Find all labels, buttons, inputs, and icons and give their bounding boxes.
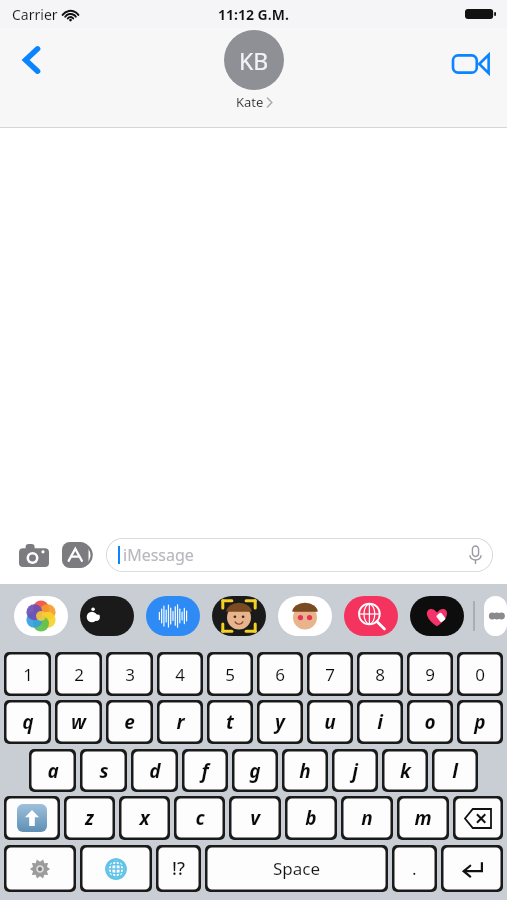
staticText: 4 <box>175 663 185 686</box>
staticText: 0 <box>475 663 485 686</box>
staticText: b <box>305 805 317 831</box>
button[interactable]: Camera <box>14 535 54 575</box>
staticText: c <box>195 805 205 831</box>
button[interactable]: Space <box>205 845 388 892</box>
staticText: l <box>452 758 458 784</box>
button[interactable]: z <box>64 796 115 840</box>
button[interactable]: o <box>407 700 453 744</box>
button[interactable]: Change keyboard <box>80 845 152 892</box>
button[interactable]: 5 <box>207 652 253 696</box>
button[interactable]: 4 <box>157 652 203 696</box>
button[interactable]: l <box>432 749 478 792</box>
staticText: z <box>85 805 94 831</box>
staticText: q <box>22 709 34 735</box>
button[interactable]: Image search <box>344 596 398 636</box>
button[interactable]: Return <box>441 845 503 892</box>
staticText: 1 <box>23 663 33 686</box>
staticText: m <box>414 805 432 831</box>
button[interactable]: 8 <box>357 652 403 696</box>
staticText: e <box>124 709 135 735</box>
staticText: Kate <box>236 93 264 111</box>
staticText: v <box>250 805 260 831</box>
button[interactable]: n <box>341 796 393 840</box>
staticText: o <box>424 709 436 735</box>
button[interactable]: e <box>106 700 153 744</box>
staticText: a <box>47 758 59 784</box>
button[interactable]: 3 <box>106 652 153 696</box>
button[interactable]: Audio message <box>146 596 200 636</box>
staticText: Space <box>273 857 321 880</box>
staticText: k <box>400 758 411 784</box>
button[interactable]: h <box>282 749 328 792</box>
staticText: 8 <box>375 663 385 686</box>
button[interactable]: s <box>80 749 127 792</box>
staticText: iMessage <box>123 544 194 566</box>
button[interactable]: 1 <box>4 652 51 696</box>
button[interactable]: Back <box>10 38 54 82</box>
button[interactable]: q <box>4 700 51 744</box>
button[interactable]: 0 <box>457 652 503 696</box>
button[interactable]: r <box>157 700 203 744</box>
button[interactable]: w <box>55 700 102 744</box>
button[interactable]: 2 <box>55 652 102 696</box>
button[interactable]: y <box>257 700 303 744</box>
staticText: x <box>139 805 150 831</box>
staticText: 9 <box>425 663 435 686</box>
button[interactable]: 6 <box>257 652 303 696</box>
staticText: p <box>474 709 486 735</box>
button[interactable]: 7 <box>307 652 353 696</box>
button[interactable]: f <box>182 749 228 792</box>
button[interactable]: c <box>174 796 225 840</box>
button[interactable]: Shift <box>4 796 60 840</box>
staticText: 5 <box>225 663 235 686</box>
button[interactable]: More apps <box>484 596 507 636</box>
button[interactable]: p <box>457 700 503 744</box>
staticText: w <box>71 709 86 735</box>
button[interactable]: x <box>119 796 170 840</box>
button[interactable]: !? <box>156 845 201 892</box>
button[interactable]: v <box>229 796 281 840</box>
button[interactable]: Apple Cash <box>80 596 134 636</box>
button[interactable]: d <box>131 749 178 792</box>
button[interactable]: Backspace <box>453 796 503 840</box>
staticText: y <box>275 709 285 735</box>
button[interactable]: b <box>285 796 337 840</box>
button[interactable]: Digital Touch <box>410 596 464 636</box>
button[interactable]: iMessage <box>106 538 493 572</box>
button[interactable]: . <box>392 845 437 892</box>
button[interactable]: Memoji stickers <box>278 596 332 636</box>
staticText: !? <box>172 856 185 881</box>
staticText: 11:12 G.M. <box>218 5 289 24</box>
staticText: u <box>324 709 336 735</box>
button[interactable]: g <box>232 749 278 792</box>
staticText: f <box>201 758 209 784</box>
staticText: 7 <box>325 663 335 686</box>
button[interactable]: Memoji <box>212 596 266 636</box>
staticText: r <box>176 709 185 735</box>
staticText: i <box>377 709 383 735</box>
button[interactable]: a <box>29 749 76 792</box>
button[interactable]: u <box>307 700 353 744</box>
staticText: 3 <box>125 663 135 686</box>
staticText: 6 <box>275 663 285 686</box>
staticText: n <box>361 805 373 831</box>
button[interactable]: Apps <box>58 535 98 575</box>
button[interactable]: m <box>397 796 449 840</box>
button[interactable]: Settings <box>4 845 76 892</box>
staticText: Carrier <box>12 5 58 24</box>
button[interactable]: k <box>382 749 428 792</box>
staticText: KB <box>239 45 269 76</box>
button[interactable]: FaceTime video call <box>447 40 495 88</box>
staticText: h <box>299 758 311 784</box>
button[interactable]: i <box>357 700 403 744</box>
staticText: t <box>226 709 234 735</box>
button[interactable]: KB <box>224 30 284 111</box>
button[interactable]: j <box>332 749 378 792</box>
button[interactable]: t <box>207 700 253 744</box>
staticText: d <box>149 758 161 784</box>
staticText: g <box>249 758 261 784</box>
button[interactable]: Photos <box>14 596 68 636</box>
staticText: s <box>99 758 109 784</box>
staticText: j <box>352 758 358 784</box>
button[interactable]: 9 <box>407 652 453 696</box>
